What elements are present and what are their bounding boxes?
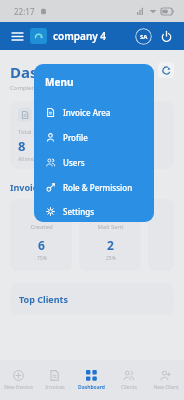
staticText: Created — [30, 223, 53, 231]
button[interactable]: Menu — [8, 27, 26, 45]
staticText: Role & Permission — [63, 182, 133, 193]
staticText: All invoices — [18, 156, 44, 163]
staticText: Top Clients — [19, 293, 69, 305]
staticText: SA — [140, 33, 148, 41]
button[interactable]: Created — [10, 199, 72, 271]
button[interactable]: Mail Sent — [79, 199, 141, 271]
staticText: Mail Sent — [97, 223, 124, 231]
button[interactable]: Invoices — [36, 360, 73, 400]
staticText: Invoices — [45, 384, 65, 391]
button[interactable]: Settings — [45, 200, 154, 222]
staticText: Profile — [63, 132, 88, 143]
staticText: New Invoice — [4, 384, 33, 391]
button[interactable]: Total Invoices — [10, 101, 88, 169]
button[interactable]: Dashboard — [73, 360, 110, 400]
staticText: 6 — [38, 237, 45, 253]
staticText: Users — [63, 157, 85, 168]
button[interactable]: New Client — [147, 360, 184, 400]
staticText: 25% — [106, 255, 116, 262]
button[interactable]: Clients — [110, 360, 147, 400]
staticText: 2 — [107, 237, 114, 253]
button[interactable]: Role & Permission — [45, 175, 154, 200]
staticText: Menu — [45, 75, 74, 89]
staticText: 22:17 — [14, 6, 35, 17]
button[interactable]: Top Clients — [10, 283, 174, 315]
staticText: 8 — [18, 137, 26, 155]
staticText: Invoices — [10, 181, 48, 193]
button[interactable]: Users — [45, 150, 154, 175]
button[interactable] — [148, 199, 174, 271]
staticText: 75% — [37, 255, 47, 262]
button[interactable]: New Invoice — [0, 360, 36, 400]
staticText: Dashboard — [10, 62, 91, 82]
staticText: Complete overview — [10, 84, 64, 92]
button[interactable]: Refresh — [158, 62, 174, 78]
staticText: Clients — [121, 384, 137, 391]
button[interactable]: Logout — [158, 28, 175, 45]
button[interactable]: Invoice Area — [45, 100, 154, 125]
staticText: Settings — [63, 206, 95, 217]
button[interactable]: Account SA — [135, 28, 152, 45]
staticText: company 4 — [53, 29, 107, 43]
button[interactable]: Profile — [45, 125, 154, 150]
staticText: Dashboard — [78, 384, 105, 391]
staticText: Total Invoices — [18, 128, 57, 136]
staticText: New Client — [153, 384, 179, 391]
staticText: Invoice Area — [63, 107, 111, 118]
button[interactable]: Total Clients — [96, 101, 174, 169]
